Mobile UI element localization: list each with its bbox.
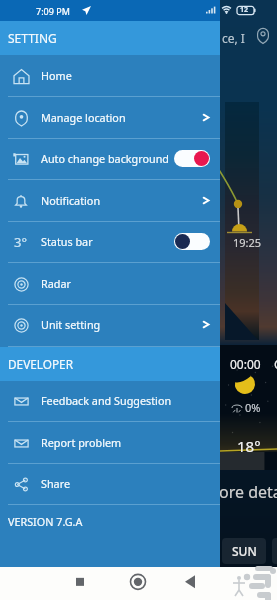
staticText: SETTING: [8, 30, 57, 46]
staticText: DEVELOPER: [8, 356, 74, 372]
staticText: ce, I: [222, 30, 245, 46]
staticText: Report problem: [41, 435, 122, 450]
staticText: 12: [240, 5, 249, 15]
button[interactable]: Notification: [0, 180, 220, 221]
button[interactable]: Feedback and Suggestion: [0, 380, 220, 421]
staticText: C: [274, 356, 277, 372]
staticText: Auto change background: [41, 151, 169, 166]
staticText: 3°: [14, 233, 28, 251]
button[interactable]: Share: [0, 463, 220, 504]
other: Location active: [82, 6, 91, 15]
button[interactable]: Auto change background: [0, 138, 220, 179]
staticText: 7:09 PM: [36, 5, 70, 17]
staticText: Home: [41, 68, 72, 83]
button[interactable]: Manage location: [0, 97, 220, 138]
staticText: VERSION 7.G.A: [8, 514, 83, 529]
staticText: Unit setting: [41, 317, 101, 332]
staticText: 00:00: [230, 356, 261, 372]
staticText: Notification: [41, 193, 101, 208]
staticText: 18°: [237, 436, 261, 456]
staticText: Radar: [41, 276, 71, 291]
button[interactable]: Home: [0, 55, 220, 96]
staticText: SUN: [232, 543, 257, 559]
button[interactable]: Radar: [0, 263, 220, 304]
staticText: Status bar: [41, 234, 93, 249]
button[interactable]: Unit setting: [0, 304, 220, 345]
button[interactable]: 3°: [0, 221, 220, 262]
staticText: Share: [41, 476, 70, 491]
staticText: ore details: [219, 481, 277, 503]
staticText: 19:25: [233, 235, 262, 250]
staticText: Manage location: [41, 110, 126, 125]
staticText: Feedback and Suggestion: [41, 393, 172, 408]
staticText: 0%: [245, 400, 261, 415]
button[interactable]: Report problem: [0, 422, 220, 463]
